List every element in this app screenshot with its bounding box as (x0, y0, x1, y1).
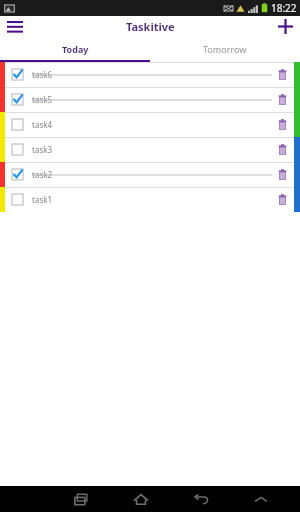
staticText: task6 (32, 69, 53, 80)
button[interactable]: Delete task6 (276, 67, 289, 83)
button[interactable]: Mark task3 complete (0, 137, 300, 162)
button[interactable]: Mark task5 incomplete (12, 94, 23, 105)
button[interactable]: Delete task5 (276, 92, 289, 108)
button[interactable]: Recent apps (51, 486, 111, 512)
button[interactable]: Mark task2 incomplete (12, 169, 23, 180)
staticText: task4 (32, 119, 53, 130)
button[interactable]: Open navigation menu (0, 16, 30, 37)
staticText: 18:22 (271, 1, 297, 15)
button[interactable]: Mark task4 complete (12, 119, 23, 130)
button[interactable]: Tomorrow (150, 37, 300, 60)
button[interactable]: Mark task6 incomplete (0, 62, 300, 87)
button[interactable]: Mark task1 complete (12, 194, 23, 205)
button[interactable]: Mark task4 complete (0, 112, 300, 137)
button[interactable]: Delete task4 (276, 117, 289, 133)
staticText: task5 (32, 94, 53, 105)
button[interactable]: Mark task5 incomplete (0, 87, 300, 112)
button[interactable]: Add task (270, 16, 300, 37)
staticText: task3 (32, 144, 53, 155)
button[interactable]: Delete task3 (276, 142, 289, 158)
staticText: Tomorrow (203, 43, 247, 55)
button[interactable]: Mark task3 complete (12, 144, 23, 155)
staticText: task2 (32, 169, 53, 180)
button[interactable]: Home (111, 486, 171, 512)
button[interactable]: Today (0, 37, 150, 60)
staticText: task1 (32, 194, 53, 205)
button[interactable]: Mark task2 incomplete (0, 162, 300, 187)
staticText: Today (62, 43, 89, 55)
button[interactable]: Back (171, 486, 231, 512)
button[interactable]: Mark task6 incomplete (12, 69, 23, 80)
button[interactable]: Show more (231, 486, 291, 512)
staticText: Taskitive (126, 19, 175, 34)
button[interactable]: Delete task1 (276, 192, 289, 208)
button[interactable]: Mark task1 complete (0, 187, 300, 212)
button[interactable]: Delete task2 (276, 167, 289, 183)
